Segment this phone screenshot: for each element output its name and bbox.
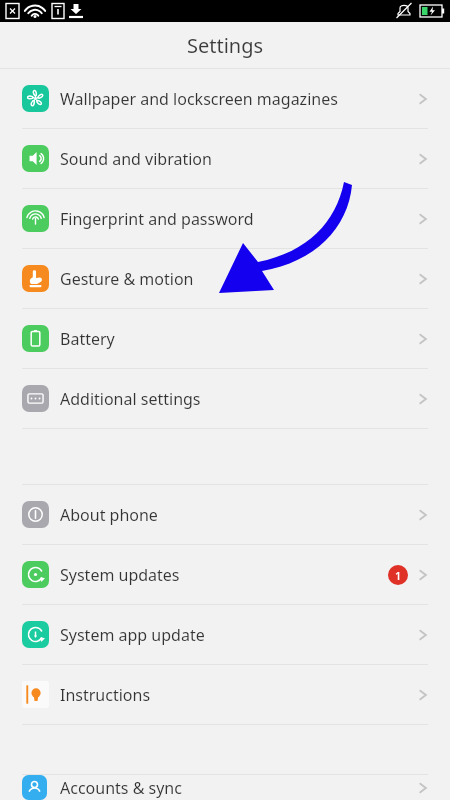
staticText: Settings: [187, 32, 264, 59]
staticText: Additional settings: [60, 388, 414, 410]
staticText: Wallpaper and lockscreen magazines: [60, 88, 414, 110]
button[interactable]: Battery: [0, 309, 450, 368]
staticText: System app update: [60, 624, 414, 646]
staticText: Battery: [60, 328, 414, 350]
button[interactable]: Sound and vibration: [0, 129, 450, 188]
button[interactable]: System updates: [0, 545, 450, 604]
button[interactable]: Fingerprint and password: [0, 189, 450, 248]
staticText: 1: [395, 568, 402, 583]
button[interactable]: Wallpaper and lockscreen magazines: [0, 69, 450, 128]
staticText: Fingerprint and password: [60, 208, 414, 230]
button[interactable]: Accounts & sync: [0, 775, 450, 800]
button[interactable]: Additional settings: [0, 369, 450, 428]
staticText: System updates: [60, 564, 388, 586]
button[interactable]: Instructions: [0, 665, 450, 724]
staticText: Gesture & motion: [60, 268, 414, 290]
staticText: Accounts & sync: [60, 777, 414, 799]
button[interactable]: About phone: [0, 485, 450, 544]
button[interactable]: System app update: [0, 605, 450, 664]
staticText: About phone: [60, 504, 414, 526]
staticText: Instructions: [60, 684, 414, 706]
staticText: Sound and vibration: [60, 148, 414, 170]
button[interactable]: Gesture & motion: [0, 249, 450, 308]
